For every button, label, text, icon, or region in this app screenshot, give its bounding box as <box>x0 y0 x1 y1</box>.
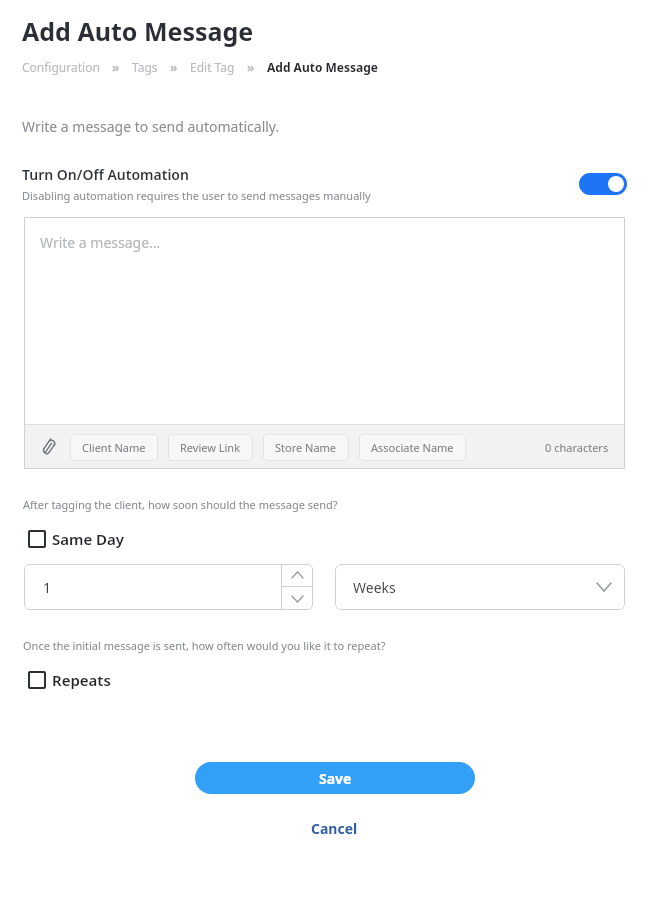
button[interactable]: Save <box>195 762 475 794</box>
staticText: 0 characters <box>545 440 609 455</box>
staticText: Repeats <box>52 670 111 690</box>
button[interactable]: Client Name <box>70 434 158 461</box>
staticText: » <box>247 59 255 75</box>
staticText: » <box>112 59 120 75</box>
button[interactable]: Decrease <box>282 587 313 610</box>
staticText: » <box>170 59 178 75</box>
staticText: Save <box>319 769 352 788</box>
button[interactable]: 1 <box>24 564 313 610</box>
button[interactable]: Edit Tag <box>190 59 235 75</box>
staticText: Add Auto Message <box>267 59 378 75</box>
staticText: Store Name <box>275 440 337 455</box>
button[interactable]: Cancel <box>301 817 368 840</box>
staticText: Weeks <box>353 578 396 597</box>
staticText: Associate Name <box>371 440 454 455</box>
button[interactable]: Turn On/Off Automation <box>579 173 627 195</box>
staticText: Same Day <box>52 529 125 549</box>
staticText: After tagging the client, how soon shoul… <box>23 497 338 512</box>
staticText: Add Auto Message <box>22 14 254 48</box>
button[interactable]: Weeks <box>335 564 625 610</box>
staticText: Client Name <box>82 440 146 455</box>
staticText: 1 <box>43 578 52 597</box>
button[interactable]: Attach file <box>36 434 62 460</box>
staticText: Write a message to send automatically. <box>22 117 280 136</box>
staticText: Cancel <box>311 819 358 838</box>
button[interactable]: Review Link <box>168 434 253 461</box>
button[interactable]: Store Name <box>263 434 349 461</box>
staticText: Once the initial message is sent, how of… <box>23 638 386 653</box>
button[interactable]: Configuration <box>22 59 100 75</box>
button[interactable]: Tags <box>132 59 158 75</box>
staticText: Write a message... <box>40 233 161 252</box>
button[interactable]: Repeats <box>28 668 119 692</box>
staticText: Disabling automation requires the user t… <box>22 188 371 203</box>
button[interactable]: Same Day <box>28 527 133 551</box>
button[interactable]: Associate Name <box>359 434 466 461</box>
staticText: Review Link <box>180 440 241 455</box>
button[interactable]: Write a message... <box>24 217 625 469</box>
button[interactable]: Increase <box>282 564 313 586</box>
staticText: Turn On/Off Automation <box>22 165 189 184</box>
